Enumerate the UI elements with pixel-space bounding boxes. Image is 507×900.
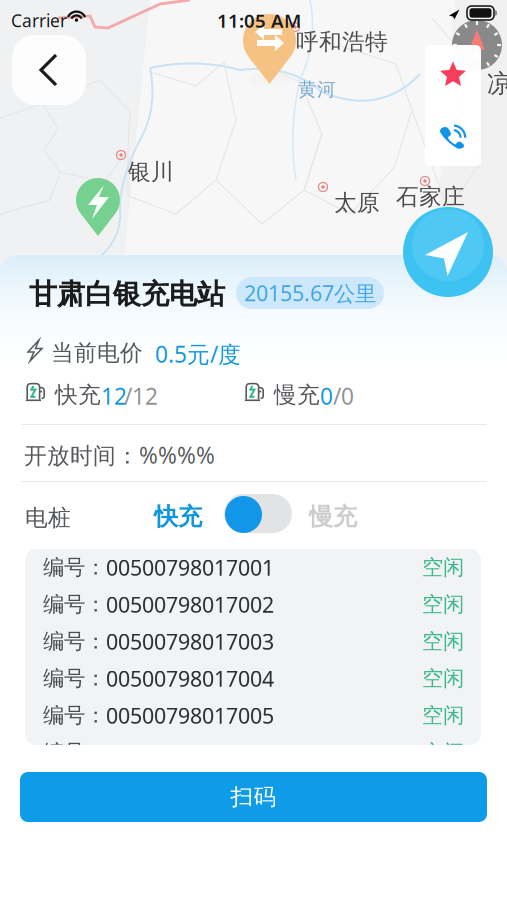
staticText: 空闲 xyxy=(422,702,464,729)
staticText: Carrier xyxy=(11,9,67,32)
button[interactable]: Back xyxy=(12,35,86,105)
staticText: 空闲 xyxy=(422,591,464,618)
staticText: 12 xyxy=(101,381,127,411)
button[interactable]: Call xyxy=(425,105,481,166)
staticText: 电桩 xyxy=(25,504,71,532)
staticText: 00500798017004 xyxy=(106,664,274,693)
staticText: 编号： xyxy=(43,665,106,692)
staticText: 黄河 xyxy=(298,78,336,101)
staticText: 编号： xyxy=(43,628,106,655)
staticText: 甘肃白银充电站 xyxy=(29,277,225,311)
staticText: 编号： xyxy=(43,739,106,766)
staticText: 空闲 xyxy=(422,739,464,766)
staticText: 慢充 xyxy=(274,381,320,409)
staticText: 石家庄 xyxy=(396,183,465,211)
staticText: 00500798017002 xyxy=(106,590,274,619)
staticText: 00500798017005 xyxy=(106,701,274,730)
staticText: 慢充 xyxy=(309,502,357,531)
staticText: 快充 xyxy=(55,381,101,409)
staticText: /12 xyxy=(124,381,158,411)
staticText: 扫码 xyxy=(230,783,276,811)
staticText: 0.5元/度 xyxy=(155,339,241,369)
staticText: 0 xyxy=(320,381,333,411)
staticText: 编号： xyxy=(43,702,106,729)
staticText: 编号： xyxy=(43,554,106,581)
staticText: 快充 xyxy=(154,502,202,531)
staticText: 空闲 xyxy=(422,554,464,581)
staticText: 空闲 xyxy=(422,628,464,655)
staticText: 银川 xyxy=(128,158,174,186)
staticText: /0 xyxy=(333,381,354,411)
staticText: 凉 xyxy=(487,68,507,99)
staticText: 当前电价 xyxy=(51,339,143,367)
button[interactable]: Navigate xyxy=(403,207,493,297)
staticText: 00500798017001 xyxy=(106,553,274,582)
staticText: 00500798017006 xyxy=(106,738,274,767)
staticText: 编号： xyxy=(43,591,106,618)
staticText: 呼和浩特 xyxy=(296,28,388,56)
staticText: 00500798017003 xyxy=(106,627,274,656)
staticText: 空闲 xyxy=(422,665,464,692)
staticText: 开放时间：%%%% xyxy=(24,440,215,470)
staticText: 20155.67公里 xyxy=(244,279,376,307)
staticText: 11:05 AM xyxy=(217,8,301,33)
staticText: 太原 xyxy=(334,189,380,217)
button[interactable]: Favorite xyxy=(425,45,481,105)
button[interactable]: Toggle charger type xyxy=(224,494,292,533)
button[interactable]: 扫码 xyxy=(20,772,487,822)
